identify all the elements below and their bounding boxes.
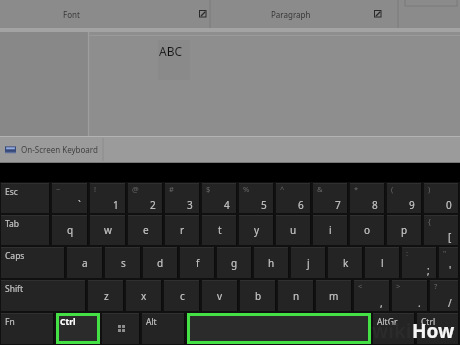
button[interactable]: g (217, 247, 252, 278)
button[interactable]: Caps (1, 247, 65, 278)
button[interactable]: 8 (350, 183, 385, 213)
staticText: % (243, 184, 250, 194)
staticText: x (141, 289, 147, 303)
button[interactable]: 3 (165, 183, 200, 213)
button[interactable]: Ctrl (56, 313, 100, 344)
button[interactable]: Shift (1, 280, 86, 311)
staticText: y (254, 223, 260, 237)
button[interactable]: x (126, 280, 162, 311)
staticText: : (406, 248, 409, 258)
staticText: $ (206, 184, 211, 194)
button[interactable]: o (350, 215, 385, 245)
staticText: m (329, 289, 339, 303)
button[interactable]: , (354, 280, 390, 311)
button[interactable]: . (392, 280, 428, 311)
staticText: ^ (280, 184, 285, 194)
button[interactable]: b (240, 280, 276, 311)
button[interactable]: / (430, 280, 459, 311)
button[interactable]: 0 (424, 183, 459, 213)
button[interactable]: y (239, 215, 274, 245)
staticText: 2 (150, 198, 156, 212)
button[interactable]: c (164, 280, 200, 311)
button[interactable]: Space (187, 313, 371, 344)
staticText: ~ (56, 184, 61, 194)
button[interactable]: v (202, 280, 238, 311)
staticText: { (428, 216, 431, 226)
button[interactable]: n (278, 280, 314, 311)
staticText: ? (434, 281, 438, 291)
button[interactable]: j (291, 247, 326, 278)
staticText: On-Screen Keyboard (21, 144, 98, 155)
button[interactable]: a (67, 247, 103, 278)
staticText: v (217, 289, 223, 303)
staticText: # (169, 184, 174, 194)
button[interactable]: Esc (1, 183, 50, 213)
button[interactable]: f (180, 247, 215, 278)
staticText: q (67, 223, 74, 237)
staticText: 6 (298, 198, 304, 212)
staticText: How (412, 318, 455, 344)
button[interactable]: d (143, 247, 178, 278)
button[interactable]: m (316, 280, 352, 311)
button[interactable]: 5 (239, 183, 274, 213)
button[interactable]: t (202, 215, 237, 245)
button[interactable]: Paragraph options (374, 10, 382, 18)
button[interactable]: s (105, 247, 141, 278)
button[interactable]: ` (52, 183, 88, 213)
staticText: g (231, 256, 238, 270)
button[interactable]: Tab (1, 215, 50, 245)
button[interactable]: ' (439, 247, 459, 278)
button[interactable]: i (313, 215, 348, 245)
button[interactable]: e (128, 215, 163, 245)
button[interactable]: Ctrl (417, 313, 459, 344)
button[interactable]: 7 (313, 183, 348, 213)
staticText: l (381, 256, 384, 270)
staticText: * (354, 184, 359, 194)
staticText: p (401, 223, 408, 237)
staticText: ' (449, 263, 452, 277)
button[interactable]: k (328, 247, 363, 278)
staticText: & (317, 184, 323, 194)
button[interactable]: 2 (128, 183, 163, 213)
button[interactable]: ; (402, 247, 437, 278)
staticText: 8 (372, 198, 378, 212)
staticText: s (121, 256, 126, 270)
button[interactable]: z (88, 280, 124, 311)
button[interactable]: [ (424, 215, 459, 245)
button[interactable]: 9 (387, 183, 422, 213)
button[interactable]: Fn (1, 313, 54, 344)
button[interactable]: 4 (202, 183, 237, 213)
button[interactable]: l (365, 247, 400, 278)
button[interactable]: Alt (142, 313, 185, 344)
staticText: Shift (5, 283, 24, 295)
staticText: ( (391, 184, 394, 194)
button[interactable]: h (254, 247, 289, 278)
staticText: c (180, 289, 185, 303)
staticText: Fn (5, 316, 15, 328)
button[interactable]: Font options (199, 10, 207, 18)
button[interactable]: 6 (276, 183, 311, 213)
staticText: k (343, 256, 349, 270)
button[interactable]: q (52, 215, 88, 245)
staticText: Font (63, 9, 80, 20)
button[interactable]: ABC (158, 40, 190, 80)
button[interactable]: 1 (90, 183, 126, 213)
staticText: 3 (187, 198, 193, 212)
button[interactable]: Windows key (102, 313, 140, 344)
staticText: a (82, 256, 88, 270)
button[interactable]: p (387, 215, 422, 245)
button[interactable]: On-Screen Keyboard (5, 144, 98, 155)
button[interactable]: r (165, 215, 200, 245)
staticText: z (104, 289, 109, 303)
staticText: i (329, 223, 332, 237)
button[interactable]: u (276, 215, 311, 245)
button[interactable]: AltGr (373, 313, 415, 344)
staticText: o (364, 223, 371, 237)
staticText: ` (78, 198, 81, 212)
staticText: d (157, 256, 164, 270)
staticText: " (443, 248, 447, 258)
staticText: r (180, 223, 185, 237)
staticText: ABC (159, 43, 183, 59)
button[interactable]: w (90, 215, 126, 245)
staticText: j (307, 256, 310, 270)
